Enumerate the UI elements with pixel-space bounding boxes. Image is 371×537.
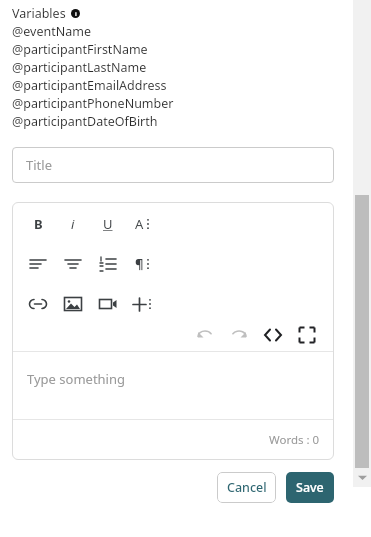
button[interactable]: Fullscreen [292,320,322,350]
button[interactable]: Underline [93,209,123,239]
staticText: @participantPhoneNumber [12,95,174,112]
button[interactable]: Align left [23,249,53,279]
staticText: Words : 0 [269,432,320,448]
button[interactable]: Bold [23,209,53,239]
button[interactable]: Cancel [217,472,276,503]
button[interactable]: Paragraph style [128,249,158,279]
button[interactable]: Save [286,472,334,503]
staticText: i [75,10,77,18]
button[interactable]: Insert image [58,289,88,319]
button[interactable]: Type something [12,352,334,419]
staticText: Cancel [227,479,267,496]
staticText: U [103,215,113,233]
staticText: ¶ [135,255,144,273]
button[interactable]: Undo [190,320,220,350]
staticText: @participantDateOfBirth [12,113,158,130]
button[interactable]: Title [12,147,334,183]
button[interactable]: Insert more [128,289,158,319]
staticText: Save [296,479,324,496]
staticText: @eventName [12,23,91,40]
staticText: Type something [27,370,125,388]
button[interactable]: Text style [128,209,158,239]
staticText: i [71,215,75,233]
button[interactable]: Align center [58,249,88,279]
button[interactable]: Code view [258,320,288,350]
button[interactable]: Redo [224,320,254,350]
staticText: @participantEmailAddress [12,77,167,94]
staticText: B [34,215,43,233]
button[interactable]: Italic [58,209,88,239]
staticText: Title [26,156,52,174]
button[interactable]: Insert link [23,289,53,319]
staticText: Variables [12,5,66,22]
staticText: @participantLastName [12,59,147,76]
staticText: @participantFirstName [12,41,148,58]
button[interactable]: Info about variables [71,9,80,18]
button[interactable]: Numbered list [93,249,123,279]
button[interactable]: Scroll down [353,468,371,487]
staticText: A [135,215,144,233]
button[interactable]: Insert video [93,289,123,319]
